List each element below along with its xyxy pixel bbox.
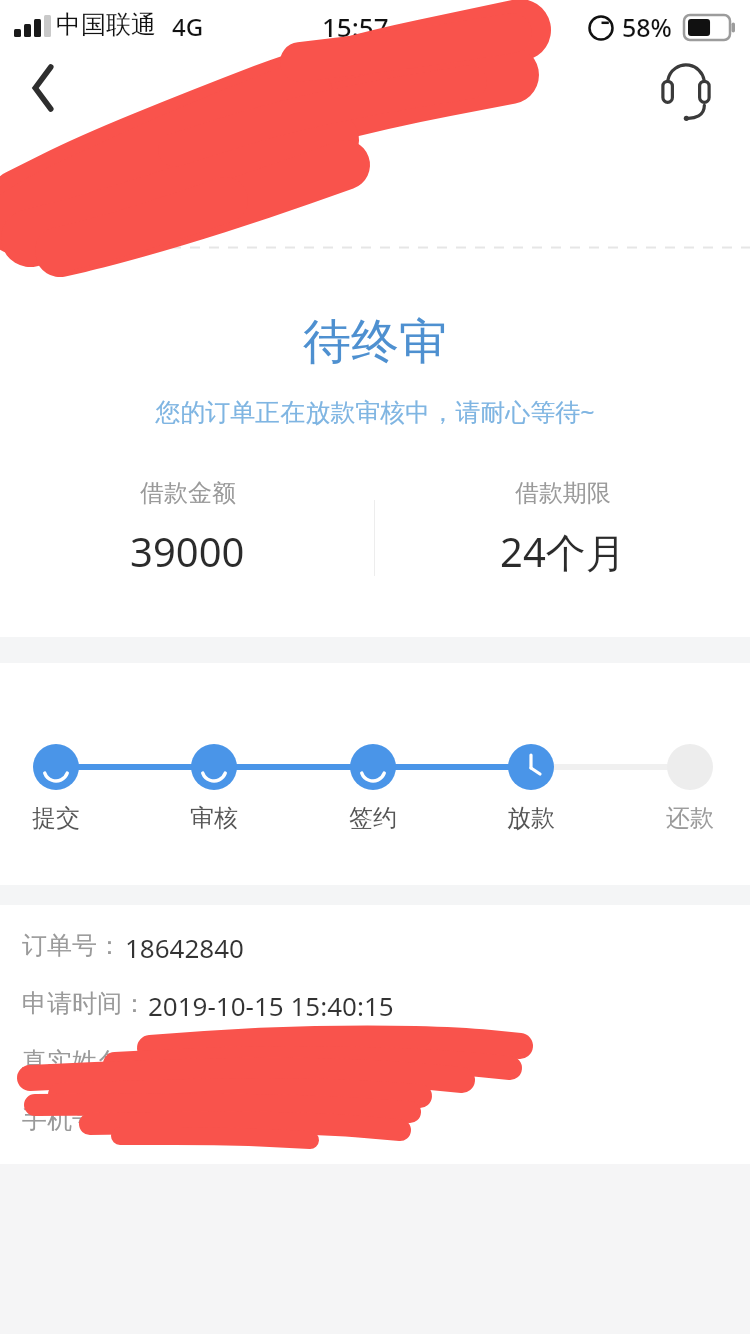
- staticText: 放款: [507, 803, 555, 833]
- staticText: 18642840: [125, 930, 244, 965]
- staticText: 您的订单正在放款审核中，请耐心等待~: [155, 394, 595, 428]
- button[interactable]: 手机号：: [0, 1104, 750, 1140]
- button[interactable]: Back: [10, 55, 76, 121]
- staticText: 15:57: [322, 9, 389, 44]
- staticText: 审核: [190, 803, 238, 833]
- button[interactable]: 真实姓名：: [0, 1046, 750, 1082]
- staticText: 24个月: [500, 524, 626, 579]
- staticText: 签约: [349, 803, 397, 833]
- button[interactable]: 提交: [11, 798, 101, 838]
- button[interactable]: 申请时间：: [0, 988, 750, 1024]
- staticText: 39000: [130, 524, 245, 578]
- staticText: 待终审: [303, 312, 447, 372]
- button[interactable]: 审核: [169, 798, 259, 838]
- staticText: 订单号：: [22, 930, 122, 961]
- staticText: 58%: [622, 10, 672, 44]
- staticText: 申请时间：: [22, 988, 147, 1019]
- button[interactable]: 还款: [645, 798, 735, 838]
- staticText: 借款金额: [140, 478, 236, 508]
- staticText: 手机号：: [22, 1104, 122, 1135]
- staticText: 还款: [666, 803, 714, 833]
- staticText: 4G: [172, 10, 204, 43]
- staticText: 真实姓名：: [22, 1046, 147, 1077]
- staticText: 提交: [32, 803, 80, 833]
- button[interactable]: 订单号：: [0, 930, 750, 966]
- button[interactable]: 放款: [486, 798, 576, 838]
- staticText: 借款期限: [515, 478, 611, 508]
- staticText: 2019-10-15 15:40:15: [148, 988, 394, 1023]
- button[interactable]: Customer service: [652, 52, 720, 120]
- staticText: 中国联通: [56, 9, 156, 40]
- button[interactable]: 签约: [328, 798, 418, 838]
